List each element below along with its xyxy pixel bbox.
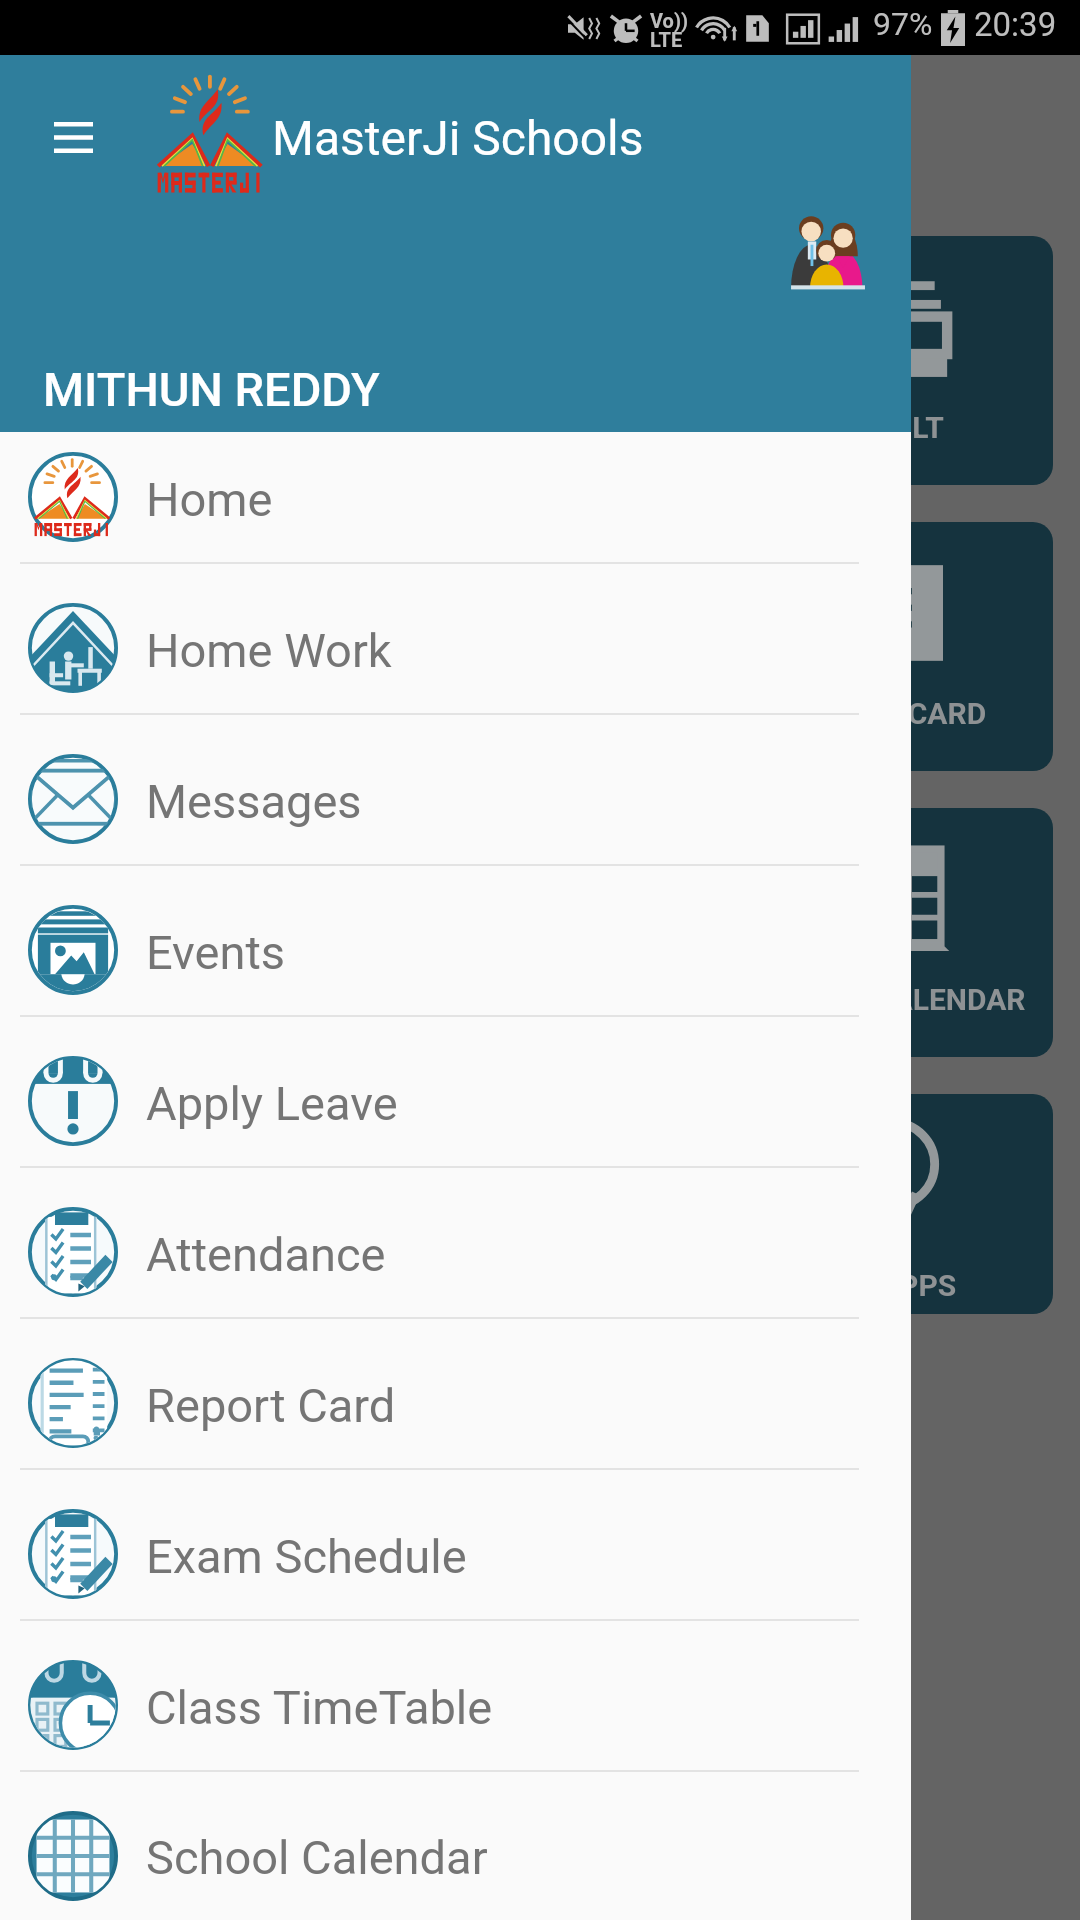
button[interactable]: Events [0,885,911,1015]
staticText: Events [146,925,286,980]
staticText: Attendance [146,1227,386,1282]
button[interactable]: RESULT [729,236,1053,485]
button[interactable]: HOMEWORK [378,236,702,485]
staticText: MESSAGES [111,696,267,731]
button[interactable]: Home [0,432,911,562]
button[interactable]: MESSAGES [27,522,351,771]
staticText: School Calendar [146,1830,488,1885]
button[interactable]: Messages [0,734,911,864]
staticText: Apply Leave [146,1076,398,1131]
staticText: 20:39 [974,5,1057,44]
button[interactable]: Class TimeTable [0,1640,911,1770]
button[interactable]: SCHOOLCALENDAR [729,808,1053,1057]
staticText: SCHOOLCALENDAR [757,982,1026,1017]
staticText: Report Card [146,1378,396,1433]
button[interactable]: Home Work [0,583,911,713]
button[interactable]: School Calendar [0,1791,911,1920]
button[interactable]: Open navigation menu [22,86,124,188]
staticText: RESULT [838,410,944,445]
staticText: Class TimeTable [146,1680,493,1735]
staticText: HOMEWORK [455,410,626,445]
button[interactable]: REPORTCARD [729,522,1053,771]
button[interactable]: Exam Schedule [0,1489,911,1619]
staticText: Exam Schedule [146,1529,467,1584]
staticText: Vo)) [650,9,688,32]
staticText: Home [146,472,273,527]
staticText: 97% [873,5,933,43]
button[interactable]: ATTENDANCE [27,236,351,485]
button[interactable]: FEES [378,1094,702,1314]
staticText: ATTENDANCE [94,410,285,445]
button[interactable]: GALLERY [27,1094,351,1314]
button[interactable]: Attendance [0,1187,911,1317]
staticText: ALLAPPS [826,1268,957,1303]
staticText: TIMETABLE [109,982,270,1017]
button[interactable]: TIMETABLE [27,808,351,1057]
staticText: LTE [650,28,683,51]
staticText: EVENTS [485,696,596,731]
staticText: Messages [146,774,362,829]
button[interactable]: ALLAPPS [729,1094,1053,1314]
staticText: EXAMS [490,982,591,1017]
staticText: GALLERY [125,1268,253,1303]
staticText: MITHUN REDDY [43,362,380,417]
button[interactable]: Report Card [0,1338,911,1468]
staticText: Home Work [146,623,392,678]
button[interactable]: Profile photo [786,207,870,289]
button[interactable]: Apply Leave [0,1036,911,1166]
button[interactable]: EVENTS [378,522,702,771]
staticText: REPORTCARD [795,696,987,731]
staticText: MasterJi Schools [272,110,644,166]
